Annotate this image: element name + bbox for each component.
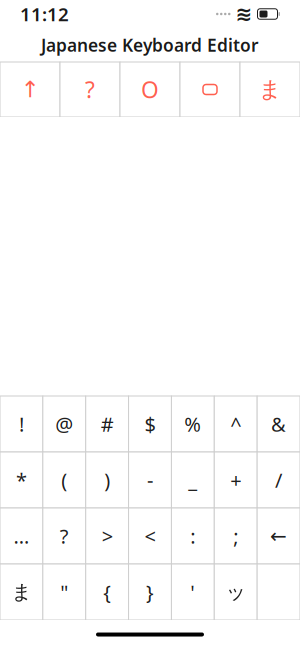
button[interactable]: ッ (214, 564, 257, 620)
button[interactable]: : (171, 508, 214, 564)
button[interactable]: ま (0, 564, 43, 620)
staticText: … (13, 523, 29, 549)
button[interactable]: ! (0, 396, 43, 452)
staticText: - (147, 467, 153, 493)
button[interactable]: - (129, 452, 171, 508)
staticText: ^ (230, 411, 241, 437)
staticText: & (271, 411, 286, 437)
staticText: 11:12 (20, 2, 69, 26)
staticText: : (190, 523, 195, 549)
staticText: ( (61, 467, 67, 493)
staticText: ← (270, 525, 287, 547)
button[interactable]: { (86, 564, 129, 620)
staticText: ' (190, 579, 195, 605)
button[interactable]: Shift (0, 62, 60, 117)
staticText: O (141, 74, 159, 104)
button[interactable]: Space (180, 62, 240, 117)
staticText: ! (19, 411, 24, 437)
button[interactable]: ? (43, 508, 86, 564)
staticText: _ (188, 467, 197, 493)
staticText: $ (144, 411, 155, 437)
button[interactable]: _ (171, 452, 214, 508)
button[interactable]: > (86, 508, 129, 564)
button[interactable]: ; (214, 508, 257, 564)
staticText: Japanese Keyboard Editor (41, 33, 259, 56)
button[interactable]: ) (86, 452, 129, 508)
button[interactable]: * (0, 452, 43, 508)
staticText: ↑ (20, 77, 39, 102)
button[interactable]: Letter O (120, 62, 180, 117)
staticText: % (184, 411, 201, 437)
staticText: ≋ (235, 3, 252, 25)
button[interactable]: ゞ (257, 564, 300, 620)
button[interactable]: % (171, 396, 214, 452)
staticText: ま (11, 580, 31, 604)
button[interactable]: + (214, 452, 257, 508)
button[interactable]: } (129, 564, 171, 620)
button[interactable]: Japanese character ma (240, 62, 300, 117)
staticText: + (230, 467, 241, 493)
button[interactable]: ' (171, 564, 214, 620)
button[interactable]: Question mark (60, 62, 120, 117)
staticText: ま (258, 76, 281, 103)
staticText: > (102, 523, 113, 549)
staticText: ? (60, 523, 69, 549)
staticText: ッ (226, 580, 246, 604)
staticText: * (16, 467, 27, 493)
staticText: } (146, 579, 154, 605)
staticText: { (103, 579, 111, 605)
button[interactable]: & (257, 396, 300, 452)
staticText: < (144, 523, 155, 549)
staticText: / (275, 467, 282, 493)
button[interactable]: # (86, 396, 129, 452)
button[interactable]: ← (257, 508, 300, 564)
staticText: " (60, 579, 68, 605)
staticText: @ (55, 411, 73, 437)
button[interactable]: ( (43, 452, 86, 508)
staticText: ) (104, 467, 110, 493)
staticText: ? (85, 74, 95, 104)
button[interactable]: $ (129, 396, 171, 452)
button[interactable]: ^ (214, 396, 257, 452)
button[interactable]: / (257, 452, 300, 508)
button[interactable]: @ (43, 396, 86, 452)
button[interactable]: " (43, 564, 86, 620)
button[interactable]: < (129, 508, 171, 564)
staticText: # (101, 411, 114, 437)
button[interactable]: … (0, 508, 43, 564)
staticText: ; (233, 523, 238, 549)
